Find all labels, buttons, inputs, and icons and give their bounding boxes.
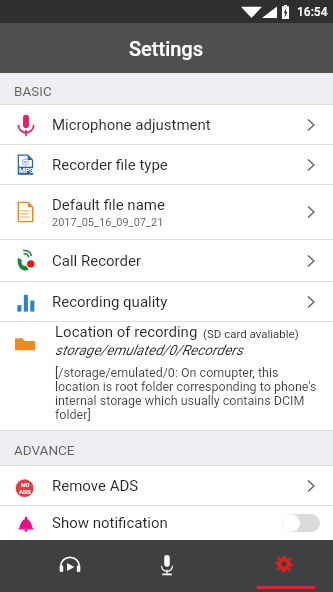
button[interactable]: Recording quality bbox=[0, 282, 333, 322]
button[interactable]: Player bbox=[0, 540, 111, 592]
button[interactable]: Call Recorder bbox=[0, 240, 333, 282]
button[interactable]: Record bbox=[111, 540, 222, 592]
staticText: Microphone adjustment bbox=[52, 116, 211, 134]
button[interactable]: NO bbox=[0, 466, 333, 506]
staticText: (SD card avaliable) bbox=[203, 327, 299, 340]
staticText: ADVANCE bbox=[14, 442, 75, 458]
staticText: Recorder file type bbox=[52, 156, 168, 174]
staticText: 16:54 bbox=[297, 5, 328, 19]
button[interactable]: Default file name bbox=[0, 185, 333, 240]
staticText: Recording quality bbox=[52, 293, 168, 311]
button[interactable]: Settings bbox=[222, 540, 333, 592]
staticText: ADS bbox=[19, 488, 31, 495]
staticText: Call Recorder bbox=[52, 252, 141, 270]
staticText: NO bbox=[21, 481, 30, 488]
staticText: Default file name bbox=[52, 196, 165, 214]
button[interactable]: Show notification bbox=[0, 506, 333, 540]
staticText: Remove ADS bbox=[52, 477, 139, 495]
staticText: 2017_05_16_09_07_21 bbox=[52, 216, 164, 229]
button[interactable]: Microphone adjustment bbox=[0, 105, 333, 145]
staticText: MP3 bbox=[19, 167, 34, 175]
staticText: storage/emulated/0/Recorders bbox=[55, 342, 243, 358]
staticText: Location of recording bbox=[55, 323, 198, 341]
staticText: [/storage/emulated/0: On comupter, this … bbox=[55, 365, 323, 422]
button[interactable]: Location of recording bbox=[0, 322, 333, 431]
staticText: BASIC bbox=[14, 83, 52, 99]
staticText: Show notification bbox=[52, 514, 282, 532]
button[interactable]: MP3 bbox=[0, 145, 333, 185]
staticText: Settings bbox=[129, 37, 204, 60]
